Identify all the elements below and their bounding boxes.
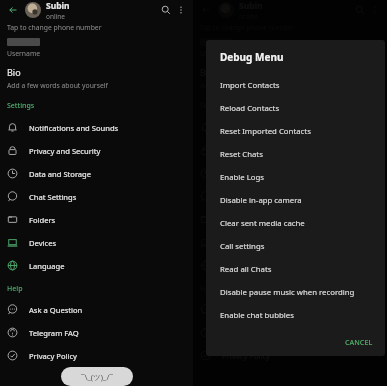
button[interactable]: Folders [0,208,193,231]
button[interactable]: Import Contacts [206,74,385,97]
staticText: ¯\_(ツ)_/¯ [81,372,113,382]
staticText: Disable pause music when recording [220,287,355,298]
button[interactable]: Back [5,2,21,18]
button[interactable]: Ask a Question [193,298,387,321]
staticText: Data and Storage [222,169,285,179]
button[interactable]: Username [193,36,387,58]
staticText: Username [7,49,41,58]
button[interactable]: Disable in-app camera [206,189,385,212]
staticText: Notifications and Sounds [29,123,119,133]
button[interactable]: Devices [193,231,387,254]
staticText: Help [200,284,216,294]
staticText: Reset Imported Contacts [220,126,311,137]
staticText: Chat Settings [29,192,77,202]
button[interactable]: Telegram FAQ [193,321,387,344]
staticText: Language [222,261,258,271]
button[interactable]: Tap to change phone number [0,19,193,36]
button[interactable]: Clear sent media cache [206,212,385,235]
staticText: Privacy and Security [29,146,101,156]
staticText: Tap to change phone number [7,23,102,32]
staticText: Import Contacts [220,80,280,91]
staticText: Call settings [220,241,265,252]
button[interactable]: CANCEL [333,332,385,352]
button[interactable]: Data and Storage [193,162,387,185]
staticText: Devices [29,238,57,248]
button[interactable]: Chat Settings [0,185,193,208]
button[interactable]: Privacy and Security [193,139,387,162]
button[interactable]: Language [193,254,387,277]
button[interactable]: Folders [193,208,387,231]
staticText: Privacy Policy [29,351,77,361]
button[interactable]: Ask a Question [0,298,193,321]
button[interactable]: Username [0,36,193,58]
staticText: Data and Storage [29,169,92,179]
staticText: Enable chat bubbles [220,310,294,321]
button[interactable]: Privacy Policy [0,344,193,367]
button[interactable]: Enable chat bubbles [206,304,385,327]
staticText: Debug Menu [220,50,284,64]
button[interactable]: Reload Contacts [206,97,385,120]
button[interactable]: Bio [0,66,193,90]
button[interactable]: More options [174,3,188,17]
staticText: Subin [239,0,263,12]
staticText: Bio [7,66,21,78]
staticText: Add a few words about yourself [7,81,108,90]
button[interactable]: Notifications and Sounds [0,116,193,139]
button[interactable]: Read all Chats [206,258,385,281]
staticText: Privacy Policy [222,351,270,361]
staticText: Folders [222,215,249,225]
staticText: Enable Logs [220,172,265,183]
staticText: CANCEL [345,337,373,347]
button[interactable]: Notifications and Sounds [193,116,387,139]
staticText: Reload Contacts [220,103,280,114]
button[interactable]: Chat Settings [193,185,387,208]
staticText: Devices [222,238,250,248]
staticText: Settings [200,101,228,111]
staticText: Folders [29,215,56,225]
button[interactable]: Disable pause music when recording [206,281,385,304]
button[interactable]: Enable Logs [206,166,385,189]
button[interactable]: Privacy Policy [193,344,387,367]
staticText: online [46,12,65,19]
staticText: Add a few words about yourself [200,81,301,90]
button[interactable]: Data and Storage [0,162,193,185]
staticText: Language [29,261,65,271]
staticText: Settings [7,101,35,111]
staticText: Help [7,284,23,294]
staticText: Username [200,49,234,58]
staticText: Chat Settings [222,192,270,202]
button[interactable]: Language [0,254,193,277]
staticText: Bio [200,66,214,78]
button[interactable]: Reset Imported Contacts [206,120,385,143]
staticText: Disable in-app camera [220,195,302,206]
button[interactable]: ¯\_(ツ)_/¯ [61,367,133,386]
button[interactable]: Privacy and Security [0,139,193,162]
button[interactable]: Devices [0,231,193,254]
staticText: Telegram FAQ [29,328,79,338]
button[interactable]: Search [158,2,174,18]
staticText: Ask a Question [222,305,276,315]
staticText: Subin [46,0,70,12]
staticText: Ask a Question [29,305,83,315]
button[interactable]: Telegram FAQ [0,321,193,344]
staticText: Privacy and Security [222,146,294,156]
button[interactable]: Bio [193,66,387,90]
button[interactable]: Call settings [206,235,385,258]
staticText: Read all Chats [220,264,272,275]
staticText: Notifications and Sounds [222,123,312,133]
staticText: Reset Chats [220,149,263,160]
button[interactable]: Reset Chats [206,143,385,166]
staticText: Clear sent media cache [220,218,305,229]
